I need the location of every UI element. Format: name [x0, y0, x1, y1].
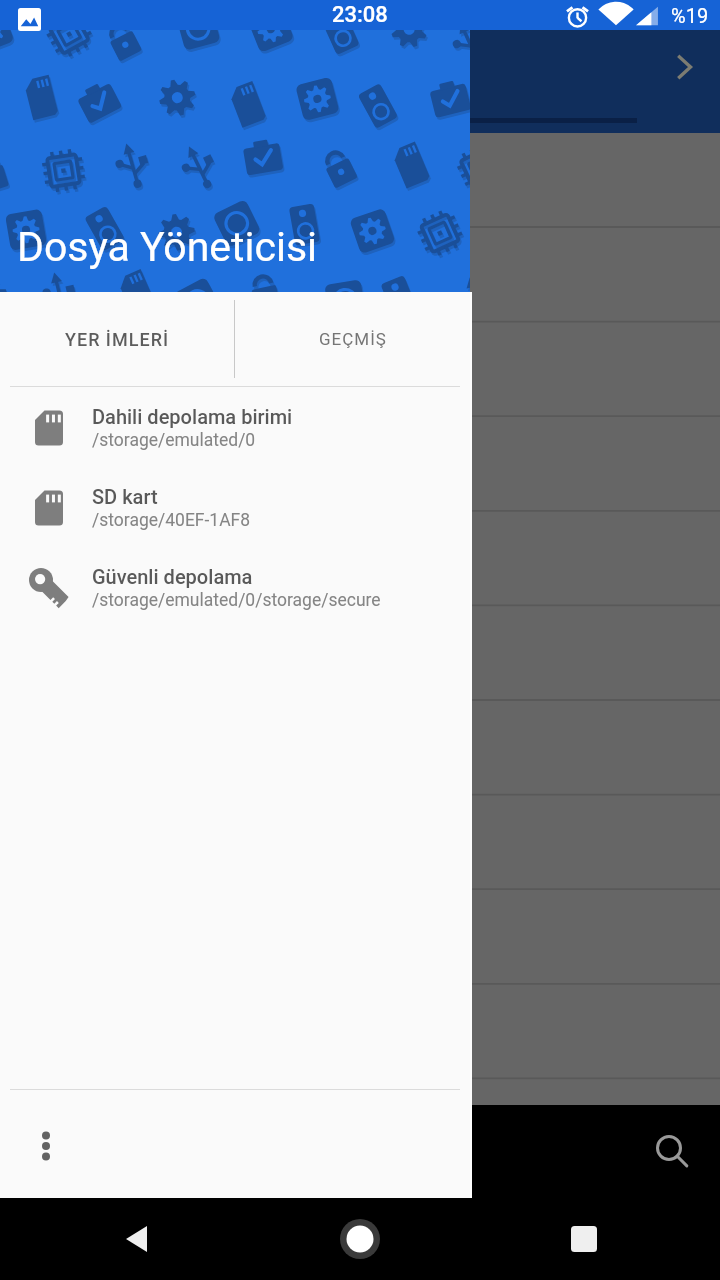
button[interactable]: GEÇMİŞ: [235, 292, 470, 386]
staticText: Dahili depolama birimi: [92, 405, 293, 428]
button[interactable]: Recents: [554, 1209, 614, 1269]
staticText: Güvenli depolama: [92, 565, 253, 588]
button[interactable]: YER İMLERİ: [0, 292, 234, 386]
staticText: YER İMLERİ: [65, 329, 169, 350]
button[interactable]: Dahili depolama birimi: [0, 388, 470, 468]
staticText: Dosya Yöneticisi: [17, 223, 318, 271]
staticText: %19: [671, 4, 709, 27]
staticText: /storage/40EF-1AF8: [92, 510, 251, 531]
staticText: /storage/emulated/0: [92, 430, 256, 451]
button[interactable]: Back: [107, 1209, 167, 1269]
button[interactable]: Güvenli depolama: [0, 548, 470, 628]
button[interactable]: SD kart: [0, 468, 470, 548]
staticText: GEÇMİŞ: [319, 329, 387, 349]
staticText: 23:08: [332, 2, 388, 28]
staticText: /storage/emulated/0/storage/secure: [92, 590, 381, 611]
button[interactable]: Forward: [660, 42, 710, 92]
button[interactable]: Home: [330, 1209, 390, 1269]
button[interactable]: More options: [20, 1120, 72, 1172]
button[interactable]: Search: [644, 1124, 700, 1180]
staticText: SD kart: [92, 485, 158, 508]
